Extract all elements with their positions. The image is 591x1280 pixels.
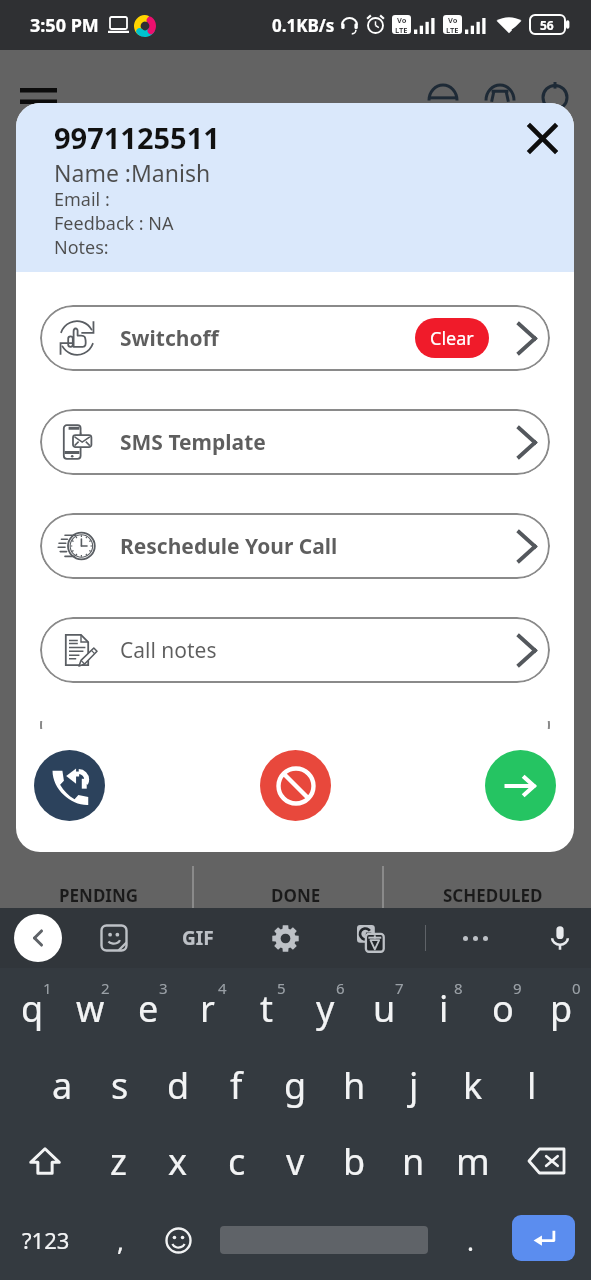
button[interactable]: b — [325, 1122, 384, 1200]
staticText: 8 — [454, 978, 463, 998]
button[interactable]: Call notes — [40, 617, 550, 683]
button[interactable]: Voice input — [536, 914, 584, 962]
staticText: Vo — [448, 15, 458, 25]
staticText: ?123 — [22, 1225, 70, 1255]
button[interactable]: q — [3, 968, 61, 1046]
button[interactable]: j — [384, 1046, 443, 1122]
staticText: 3:50 PM — [30, 13, 99, 38]
button[interactable]: GIF — [174, 914, 222, 962]
button[interactable]: Backspace — [502, 1122, 591, 1200]
staticText: . — [467, 1223, 474, 1258]
button[interactable]: Reject — [260, 750, 331, 821]
button[interactable]: Shift — [0, 1122, 89, 1200]
button[interactable]: Call back — [34, 750, 105, 821]
button[interactable]: y — [296, 968, 355, 1046]
button[interactable]: k — [443, 1046, 502, 1122]
staticText: q — [21, 984, 44, 1033]
staticText: l — [527, 1061, 537, 1110]
button[interactable]: m — [443, 1122, 502, 1200]
button[interactable]: g — [266, 1046, 325, 1122]
button[interactable]: , — [94, 1200, 146, 1280]
staticText: y — [316, 984, 335, 1033]
staticText: a — [52, 1061, 73, 1110]
staticText: x — [168, 1137, 188, 1186]
button[interactable]: s — [91, 1046, 149, 1122]
staticText: f — [230, 1061, 243, 1110]
staticText: d — [167, 1061, 190, 1110]
button[interactable]: DONE — [197, 872, 394, 918]
button[interactable]: u — [355, 968, 414, 1046]
button[interactable]: Back — [14, 914, 62, 962]
button[interactable]: Emoji — [152, 1200, 204, 1280]
staticText: PENDING — [59, 884, 139, 907]
button[interactable] — [451, 914, 499, 962]
button[interactable]: Next — [485, 750, 556, 821]
staticText: 6 — [336, 978, 345, 998]
staticText: SCHEDULED — [443, 884, 543, 907]
button[interactable]: p — [532, 968, 591, 1046]
button[interactable] — [90, 914, 138, 962]
staticText: 2 — [101, 978, 110, 998]
staticText: t — [260, 984, 273, 1033]
button[interactable]: Reschedule Your Call — [40, 513, 550, 579]
button[interactable]: f — [207, 1046, 266, 1122]
staticText: r — [200, 984, 215, 1033]
staticText: h — [343, 1061, 366, 1110]
staticText: Clear — [430, 326, 474, 351]
button[interactable]: c — [207, 1122, 266, 1200]
staticText: Notes: — [54, 235, 109, 260]
button[interactable]: x — [148, 1122, 207, 1200]
staticText: Name :Manish — [54, 157, 211, 188]
staticText: 0.1KB/s — [272, 14, 335, 37]
button[interactable]: PENDING — [0, 872, 197, 918]
staticText: p — [550, 984, 573, 1033]
button[interactable] — [261, 914, 309, 962]
staticText: , — [117, 1223, 124, 1258]
button[interactable]: r — [178, 968, 237, 1046]
button[interactable]: . — [444, 1200, 496, 1280]
button[interactable]: i — [414, 968, 473, 1046]
button[interactable]: Enter — [512, 1215, 575, 1261]
staticText: n — [402, 1137, 425, 1186]
staticText: 4 — [218, 978, 227, 998]
button[interactable]: ?123 — [10, 1200, 82, 1280]
staticText: 5 — [277, 978, 286, 998]
button[interactable]: v — [266, 1122, 325, 1200]
button[interactable]: o — [473, 968, 532, 1046]
button[interactable]: z — [89, 1122, 148, 1200]
staticText: LTE — [446, 25, 459, 34]
button[interactable]: Translate — [346, 914, 394, 962]
staticText: Feedback : NA — [54, 211, 174, 236]
staticText: DONE — [271, 884, 321, 907]
staticText: Reschedule Your Call — [120, 532, 338, 561]
button[interactable]: t — [237, 968, 296, 1046]
button[interactable]: SCHEDULED — [394, 872, 591, 918]
staticText: s — [111, 1061, 129, 1110]
staticText: e — [138, 984, 159, 1033]
button[interactable]: w — [61, 968, 119, 1046]
staticText: w — [76, 984, 105, 1033]
staticText: Switchoff — [120, 324, 219, 353]
button[interactable]: Close — [518, 114, 566, 162]
button[interactable]: n — [384, 1122, 443, 1200]
button[interactable]: Space — [212, 1200, 436, 1280]
button[interactable]: l — [502, 1046, 561, 1122]
button[interactable]: SMS Template — [40, 409, 550, 475]
button[interactable]: e — [119, 968, 178, 1046]
button[interactable]: d — [149, 1046, 207, 1122]
staticText: 9 — [513, 978, 522, 998]
staticText: 7 — [395, 978, 404, 998]
staticText: u — [373, 984, 396, 1033]
staticText: i — [439, 984, 449, 1033]
staticText: LTE — [395, 25, 408, 34]
staticText: v — [286, 1137, 305, 1186]
button[interactable]: Switchoff — [40, 305, 550, 371]
button[interactable]: Clear — [415, 318, 489, 358]
staticText: SMS Template — [120, 428, 266, 457]
button[interactable]: a — [33, 1046, 91, 1122]
staticText: Email : — [54, 187, 110, 212]
staticText: j — [409, 1061, 419, 1110]
button[interactable]: h — [325, 1046, 384, 1122]
staticText: GIF — [182, 925, 214, 951]
staticText: 0 — [572, 978, 581, 998]
